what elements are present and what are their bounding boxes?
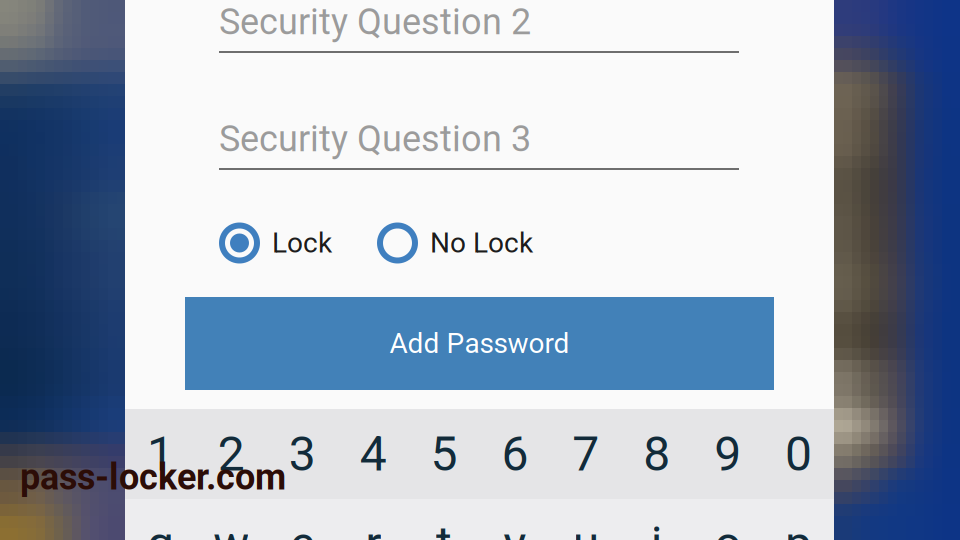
staticText: i — [651, 516, 663, 540]
staticText: w — [213, 516, 249, 540]
staticText: q — [147, 516, 174, 540]
staticText: 7 — [572, 426, 599, 482]
staticText: t — [436, 516, 452, 540]
staticText: Lock — [272, 227, 332, 259]
button[interactable]: 6 — [479, 409, 550, 499]
staticText: 5 — [431, 426, 458, 482]
staticText: y — [503, 516, 526, 540]
staticText: 4 — [360, 426, 387, 482]
button[interactable]: 8 — [621, 409, 692, 499]
staticText: e — [290, 516, 315, 540]
button[interactable]: q — [125, 499, 196, 540]
button[interactable]: No Lock — [377, 221, 533, 265]
staticText: 9 — [714, 426, 741, 482]
button[interactable]: 5 — [409, 409, 479, 499]
staticText: Add Password — [389, 327, 569, 360]
staticText: 0 — [785, 426, 812, 482]
button[interactable]: 4 — [338, 409, 409, 499]
button[interactable]: Security Question 3 — [219, 118, 739, 170]
button[interactable]: 3 — [267, 409, 338, 499]
button[interactable]: 1 — [125, 409, 196, 499]
button[interactable]: i — [621, 499, 692, 540]
button[interactable]: o — [692, 499, 763, 540]
button[interactable]: Add Password — [185, 297, 774, 390]
button[interactable]: r — [338, 499, 409, 540]
staticText: pass-locker.com — [20, 456, 286, 498]
staticText: Security Question 3 — [219, 118, 531, 160]
staticText: 1 — [147, 426, 174, 482]
staticText: 3 — [289, 426, 316, 482]
staticText: 6 — [501, 426, 528, 482]
button[interactable]: 2 — [196, 409, 267, 499]
button[interactable]: e — [267, 499, 338, 540]
button[interactable]: 0 — [763, 409, 834, 499]
staticText: o — [714, 516, 741, 540]
staticText: r — [365, 516, 381, 540]
button[interactable]: Security Question 2 — [219, 1, 739, 53]
staticText: No Lock — [430, 227, 533, 259]
button[interactable]: 9 — [692, 409, 763, 499]
staticText: p — [785, 516, 812, 540]
button[interactable]: y — [479, 499, 550, 540]
button[interactable]: w — [196, 499, 267, 540]
button[interactable]: t — [409, 499, 479, 540]
staticText: 8 — [643, 426, 670, 482]
staticText: Security Question 2 — [219, 1, 531, 43]
button[interactable]: u — [550, 499, 621, 540]
button[interactable]: 7 — [550, 409, 621, 499]
button[interactable]: Lock — [219, 221, 332, 265]
button[interactable]: p — [763, 499, 834, 540]
staticText: 2 — [218, 426, 245, 482]
staticText: u — [573, 516, 599, 540]
